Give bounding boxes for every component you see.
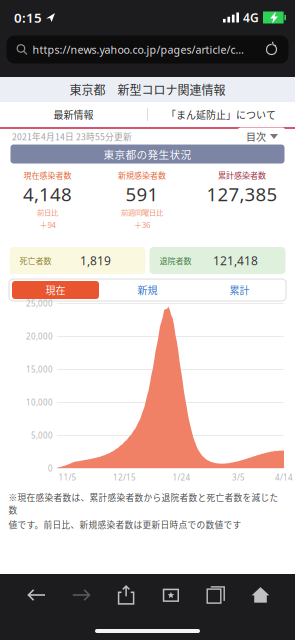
staticText: 東京都 新型コロナ関連情報 [69, 81, 225, 98]
staticText: 5,000 [31, 430, 53, 441]
button[interactable]: 累計 [193, 279, 285, 301]
staticText: 20,000 [26, 331, 53, 342]
button[interactable]: 「まん延防止」について [147, 102, 295, 127]
staticText: 1/24 [172, 472, 190, 483]
button[interactable]: Home [238, 574, 283, 616]
button[interactable]: Tabs [193, 574, 238, 616]
staticText: 4/14 [275, 472, 293, 483]
staticText: 121,418 [213, 252, 258, 268]
staticText: 3/5 [232, 472, 245, 483]
button[interactable]: Back [14, 574, 59, 616]
staticText: 0 [48, 463, 53, 474]
staticText: 10,000 [26, 397, 53, 408]
staticText: 前週同曜日比 [121, 207, 163, 217]
staticText: 11/5 [58, 472, 76, 483]
staticText: 4G [243, 9, 259, 25]
button[interactable]: Share [104, 574, 148, 616]
button[interactable]: https://news.yahoo.co.jp/pages/article/c… [6, 35, 254, 63]
button[interactable]: 現在 [9, 279, 101, 301]
button[interactable]: Bookmarks [148, 574, 193, 616]
staticText: 値です。前日比、新規感染者数は更新日時点での数値です [8, 518, 241, 531]
staticText: 東京都の発生状況 [103, 146, 191, 162]
staticText: 新規 [137, 283, 157, 297]
staticText: 1,819 [80, 252, 111, 268]
staticText: 2021年4月14日 23時55分更新 [12, 130, 132, 143]
staticText: 最新情報 [53, 107, 93, 122]
staticText: ＋36 [134, 219, 150, 230]
staticText: 12/15 [113, 472, 136, 483]
staticText: 127,385 [206, 182, 277, 206]
button[interactable]: 新規 [101, 279, 193, 301]
staticText: 15,000 [26, 364, 53, 375]
staticText: 目次 [246, 129, 266, 144]
staticText: https://news.yahoo.co.jp/pages/article/c… [32, 42, 243, 57]
staticText: 591 [125, 182, 158, 206]
staticText: 死亡者数 [19, 255, 51, 266]
staticText: 新規感染者数 [118, 169, 166, 181]
staticText: 現在感染者数 [23, 169, 71, 181]
button[interactable]: 最新情報 [0, 102, 147, 127]
staticText: 25,000 [26, 298, 53, 309]
staticText: 累計 [229, 283, 249, 297]
staticText: ＋94 [39, 219, 55, 230]
button[interactable]: Forward [59, 574, 104, 616]
staticText: 前日比 [37, 207, 58, 217]
staticText: 現在 [45, 283, 65, 297]
staticText: 4,148 [23, 182, 72, 206]
staticText: 累計感染者数 [218, 169, 266, 181]
staticText: 退院者数 [159, 255, 191, 266]
staticText: 「まん延防止」について [166, 107, 276, 122]
staticText: 0:15 [14, 9, 42, 26]
staticText: ※現在感染者数は、累計感染者数から退院者数と死亡者数を減じた数 [8, 491, 278, 516]
button[interactable]: Reload [254, 35, 288, 63]
button[interactable]: 目次 [237, 127, 286, 145]
